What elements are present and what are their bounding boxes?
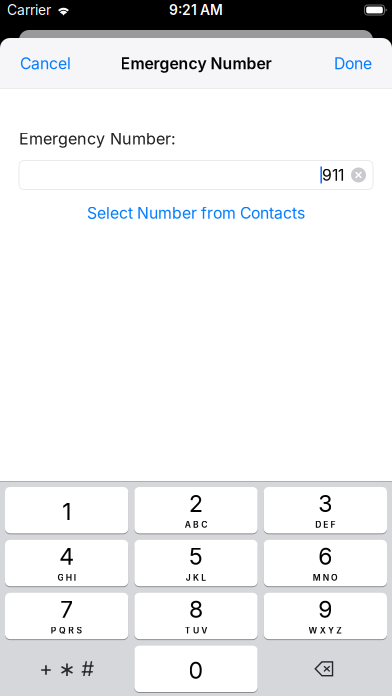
button[interactable]: 2 [134, 487, 258, 533]
staticText: C [201, 519, 207, 530]
button[interactable]: 4 [5, 540, 128, 586]
staticText: Select Number from Contacts [87, 203, 305, 222]
staticText: Q [59, 625, 66, 636]
staticText: E [323, 519, 328, 530]
button[interactable]: Select Number from Contacts [0, 199, 392, 226]
button[interactable]: Plus star hash [5, 646, 128, 692]
staticText: 9:21 AM [169, 2, 223, 18]
staticText: B [193, 519, 199, 530]
staticText: 6 [318, 542, 332, 570]
staticText: 5 [189, 542, 203, 570]
staticText: W [308, 625, 317, 636]
staticText: Z [336, 625, 342, 636]
staticText: 911 [322, 165, 344, 184]
staticText: J [186, 572, 191, 583]
button[interactable]: Cancel [12, 45, 79, 82]
staticText: Y [328, 625, 334, 636]
button[interactable]: 7 [5, 593, 128, 639]
staticText: N [323, 572, 329, 583]
staticText: P [51, 625, 57, 636]
button[interactable]: 6 [264, 540, 387, 586]
staticText: 9 [318, 595, 332, 623]
staticText: Emergency Number: [19, 129, 176, 148]
staticText: Done [334, 54, 372, 73]
staticText: 4 [59, 542, 74, 570]
staticText: G [57, 572, 63, 583]
button[interactable]: Done [326, 45, 380, 82]
staticText: + ∗ # [39, 656, 94, 681]
staticText: 8 [189, 595, 203, 623]
staticText: X [320, 625, 326, 636]
staticText: H [66, 572, 72, 583]
staticText: V [201, 625, 207, 636]
staticText: Carrier [7, 2, 51, 18]
staticText: 0 [188, 656, 203, 684]
staticText: M [313, 572, 321, 583]
staticText: R [68, 625, 74, 636]
staticText: I [74, 572, 76, 583]
button[interactable]: 9 [264, 593, 387, 639]
staticText: A [185, 519, 191, 530]
button[interactable]: 8 [134, 593, 258, 639]
staticText: 7 [60, 595, 73, 623]
staticText: U [193, 625, 199, 636]
button[interactable]: Delete [264, 646, 387, 692]
staticText: S [76, 625, 82, 636]
button[interactable]: 0 [134, 646, 258, 692]
staticText: D [315, 519, 321, 530]
staticText: Emergency Number [120, 54, 271, 73]
staticText: L [201, 572, 206, 583]
button[interactable]: 1 [5, 487, 128, 533]
staticText: 1 [62, 498, 71, 526]
staticText: T [185, 625, 191, 636]
button[interactable]: 5 [134, 540, 258, 586]
staticText: F [330, 519, 335, 530]
button[interactable]: 3 [264, 487, 387, 533]
staticText: Cancel [20, 54, 71, 73]
staticText: K [193, 572, 199, 583]
staticText: 2 [189, 489, 203, 517]
staticText: 3 [318, 489, 332, 517]
staticText: O [331, 572, 338, 583]
